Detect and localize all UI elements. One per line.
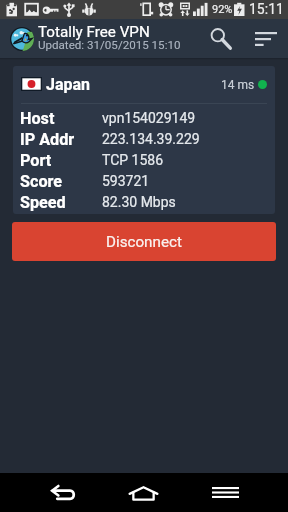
staticText: 593721	[102, 173, 150, 189]
button[interactable]: Sort	[246, 19, 286, 58]
staticText: 92%	[212, 3, 233, 16]
staticText: Japan	[46, 75, 91, 94]
staticText: TCP 1586	[102, 152, 164, 168]
staticText: IP Addr	[20, 130, 75, 149]
staticText: Disconnect	[106, 233, 182, 251]
button[interactable]: Back	[36, 473, 92, 512]
staticText: Host	[20, 109, 55, 128]
staticText: vpn154029149	[102, 110, 196, 126]
staticText: 82.30 Mbps	[102, 194, 176, 210]
button[interactable]: Recent apps	[197, 473, 253, 512]
button[interactable]: Japan	[13, 66, 275, 214]
staticText: Score	[20, 172, 63, 191]
staticText: 14 ms	[221, 78, 255, 92]
staticText: Port	[20, 151, 52, 170]
button[interactable]: Home	[115, 473, 171, 512]
button[interactable]: Search	[196, 19, 246, 58]
staticText: Updated: 31/05/2015 15:10	[38, 38, 181, 52]
staticText: 15:11	[249, 1, 284, 17]
staticText: 223.134.39.229	[102, 131, 200, 147]
button[interactable]: Disconnect	[12, 222, 276, 261]
staticText: Speed	[20, 193, 66, 212]
staticText: Totally Free VPN	[38, 23, 150, 41]
